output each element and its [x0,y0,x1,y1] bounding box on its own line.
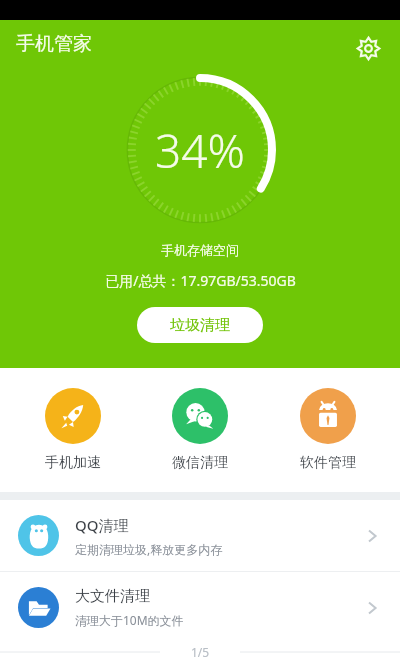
staticText: 已用/总共：17.97GB/53.50GB [105,271,296,290]
button[interactable]: 大文件清理 [0,572,400,643]
staticText: 手机存储空间 [161,242,239,258]
button[interactable]: 手机加速 [18,382,128,478]
button[interactable]: QQ清理 [0,500,400,571]
staticText: 微信清理 [172,454,228,472]
staticText: 大文件清理 [75,587,150,606]
staticText: 34% [155,119,245,182]
staticText: 垃圾清理 [170,316,230,335]
staticText: 清理大于10M的文件 [75,612,184,628]
staticText: 手机管家 [16,32,92,56]
staticText: QQ清理 [75,515,129,535]
staticText: 定期清理垃圾,释放更多内存 [75,541,223,557]
button[interactable]: Settings [348,28,388,68]
button[interactable]: 垃圾清理 [137,307,263,343]
staticText: 软件管理 [300,454,356,472]
staticText: 1/5 [191,644,210,660]
button[interactable]: 软件管理 [273,382,383,478]
staticText: 手机加速 [45,454,101,472]
button[interactable]: 微信清理 [145,382,255,478]
